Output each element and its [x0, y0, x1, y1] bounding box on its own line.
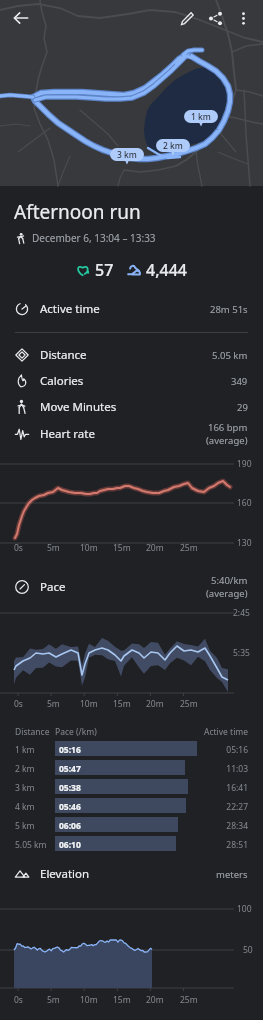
staticText: Active time [40, 301, 100, 317]
staticText: 0s [14, 994, 23, 1006]
staticText: 5 km [15, 820, 35, 832]
staticText: 1 km [15, 744, 35, 756]
staticText: 05:38 [59, 782, 81, 794]
staticText: 5m [47, 698, 60, 710]
staticText: 3 km [117, 149, 137, 161]
staticText: 05:47 [59, 763, 81, 775]
staticText: 25m [180, 994, 198, 1006]
staticText: Heart rate [40, 426, 95, 442]
staticText: 05:46 [59, 801, 81, 813]
staticText: 130 [237, 537, 252, 549]
staticText: 4 km [15, 801, 35, 813]
staticText: 05:16 [204, 744, 248, 756]
staticText: 29 [237, 401, 248, 414]
staticText: 190 [237, 458, 252, 470]
staticText: Afternoon run [14, 199, 141, 225]
staticText: 5:40/km [211, 574, 248, 587]
staticText: Elevation [40, 866, 90, 882]
staticText: 10m [80, 994, 98, 1006]
staticText: 160 [237, 497, 252, 509]
staticText: 166 bpm [208, 421, 248, 434]
staticText: Pace [40, 579, 66, 595]
button[interactable]: Elevation [0, 860, 263, 888]
staticText: 25m [180, 542, 198, 554]
staticText: 20m [146, 994, 164, 1006]
staticText: 5.05 km [212, 349, 248, 362]
staticText: 100 [237, 903, 252, 915]
staticText: 25m [180, 698, 198, 710]
staticText: 349 [231, 375, 248, 388]
staticText: 2 km [15, 763, 35, 775]
button[interactable]: Move Minutes [0, 394, 263, 420]
staticText: 28m 51s [210, 303, 248, 316]
staticText: 4,444 [146, 259, 187, 281]
button[interactable]: Distance [0, 342, 263, 368]
staticText: 16:41 [204, 782, 248, 794]
staticText: 15m [113, 994, 131, 1006]
staticText: 2 km [163, 140, 183, 152]
staticText: 05:16 [59, 744, 81, 756]
staticText: 06:10 [59, 839, 81, 851]
staticText: 3 km [15, 782, 35, 794]
staticText: 5:35 [233, 647, 250, 659]
staticText: 1 km [191, 111, 211, 123]
button[interactable]: Share [201, 4, 229, 32]
staticText: 22:27 [204, 801, 248, 813]
staticText: 06:06 [59, 820, 81, 832]
staticText: 28:51 [204, 839, 248, 851]
button[interactable]: Heart rate [0, 420, 263, 448]
staticText: Distance [40, 347, 87, 363]
staticText: 20m [146, 698, 164, 710]
staticText: Active time [204, 726, 249, 738]
staticText: 11:03 [204, 763, 248, 775]
staticText: (average) [206, 587, 248, 600]
staticText: 10m [80, 698, 98, 710]
button[interactable]: Edit [173, 4, 201, 32]
button[interactable]: Active time [0, 296, 263, 322]
staticText: 15m [113, 698, 131, 710]
staticText: 50 [243, 944, 253, 956]
staticText: 0s [14, 542, 23, 554]
button[interactable]: More options [229, 4, 257, 32]
staticText: 10m [80, 542, 98, 554]
staticText: 5m [47, 542, 60, 554]
staticText: (average) [206, 434, 248, 447]
staticText: 2:45 [233, 607, 250, 619]
button[interactable]: Pace [0, 572, 263, 602]
button[interactable]: Calories [0, 368, 263, 394]
staticText: 5m [47, 994, 60, 1006]
staticText: 5.05 km [15, 839, 47, 851]
staticText: 57 [95, 259, 114, 281]
staticText: 28:34 [204, 820, 248, 832]
staticText: 0s [14, 698, 23, 710]
staticText: December 6, 13:04 – 13:33 [32, 231, 156, 245]
staticText: Pace (/km) [55, 726, 97, 738]
button[interactable]: Back [6, 3, 36, 33]
staticText: meters [216, 868, 248, 881]
staticText: Calories [40, 373, 84, 389]
staticText: Move Minutes [40, 399, 117, 415]
staticText: Distance [15, 726, 50, 738]
staticText: 15m [113, 542, 131, 554]
staticText: 20m [146, 542, 164, 554]
